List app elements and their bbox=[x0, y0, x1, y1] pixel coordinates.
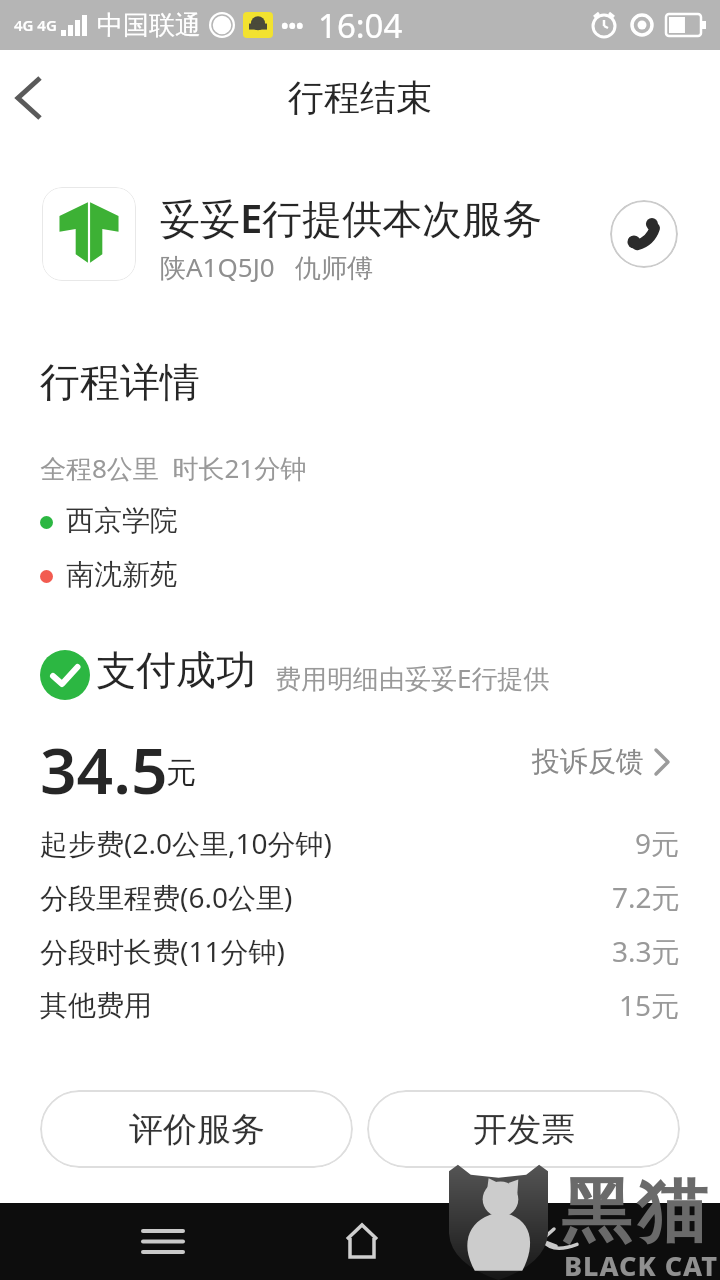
button[interactable] bbox=[610, 200, 678, 268]
staticText: 西京学院 bbox=[66, 503, 178, 538]
staticText: 15元 bbox=[619, 986, 680, 1024]
staticText: 起步费(2.0公里,10分钟) bbox=[40, 824, 332, 862]
button[interactable] bbox=[332, 1211, 392, 1271]
staticText: 费用明细由妥妥E行提供 bbox=[275, 660, 550, 696]
staticText: 中国联通 bbox=[97, 9, 201, 42]
staticText: 分段里程费(6.0公里) bbox=[40, 878, 293, 916]
staticText: 其他费用 bbox=[40, 988, 152, 1023]
staticText: 7.2元 bbox=[612, 878, 680, 916]
button[interactable] bbox=[133, 1211, 193, 1271]
staticText: 南沈新苑 bbox=[66, 557, 178, 592]
button[interactable] bbox=[527, 1211, 587, 1271]
staticText: 4G 4G bbox=[14, 15, 57, 35]
staticText: 全程8公里 时长21分钟 bbox=[40, 450, 307, 486]
button[interactable] bbox=[0, 70, 56, 126]
staticText: 3.3元 bbox=[612, 932, 680, 970]
button[interactable]: 开发票 bbox=[367, 1090, 680, 1168]
button[interactable]: 起步费(2.0公里,10分钟) bbox=[40, 824, 680, 862]
staticText: 9元 bbox=[635, 824, 680, 862]
staticText: 开发票 bbox=[473, 1108, 575, 1151]
staticText: 16:04 bbox=[318, 3, 403, 48]
button[interactable]: 其他费用 bbox=[40, 986, 680, 1024]
staticText: 黑猫 bbox=[558, 1168, 710, 1256]
button[interactable]: 投诉反馈 bbox=[532, 744, 670, 779]
staticText: 妥妥E行提供本次服务 bbox=[160, 190, 543, 245]
staticText: 行程结束 bbox=[288, 75, 432, 120]
staticText: ••• bbox=[281, 12, 304, 39]
staticText: 投诉反馈 bbox=[532, 744, 644, 779]
staticText: 行程详情 bbox=[40, 357, 200, 407]
staticText: 34.5 bbox=[40, 726, 168, 813]
staticText: BLACK CAT bbox=[564, 1247, 719, 1280]
staticText: 评价服务 bbox=[129, 1108, 265, 1151]
button[interactable]: 分段时长费(11分钟) bbox=[40, 932, 680, 970]
staticText: 支付成功 bbox=[96, 645, 256, 695]
button[interactable]: 评价服务 bbox=[40, 1090, 353, 1168]
staticText: 分段时长费(11分钟) bbox=[40, 932, 285, 970]
staticText: 元 bbox=[166, 754, 196, 792]
staticText: 陕A1Q5J0 仇师傅 bbox=[160, 249, 373, 285]
button[interactable]: 分段里程费(6.0公里) bbox=[40, 878, 680, 916]
